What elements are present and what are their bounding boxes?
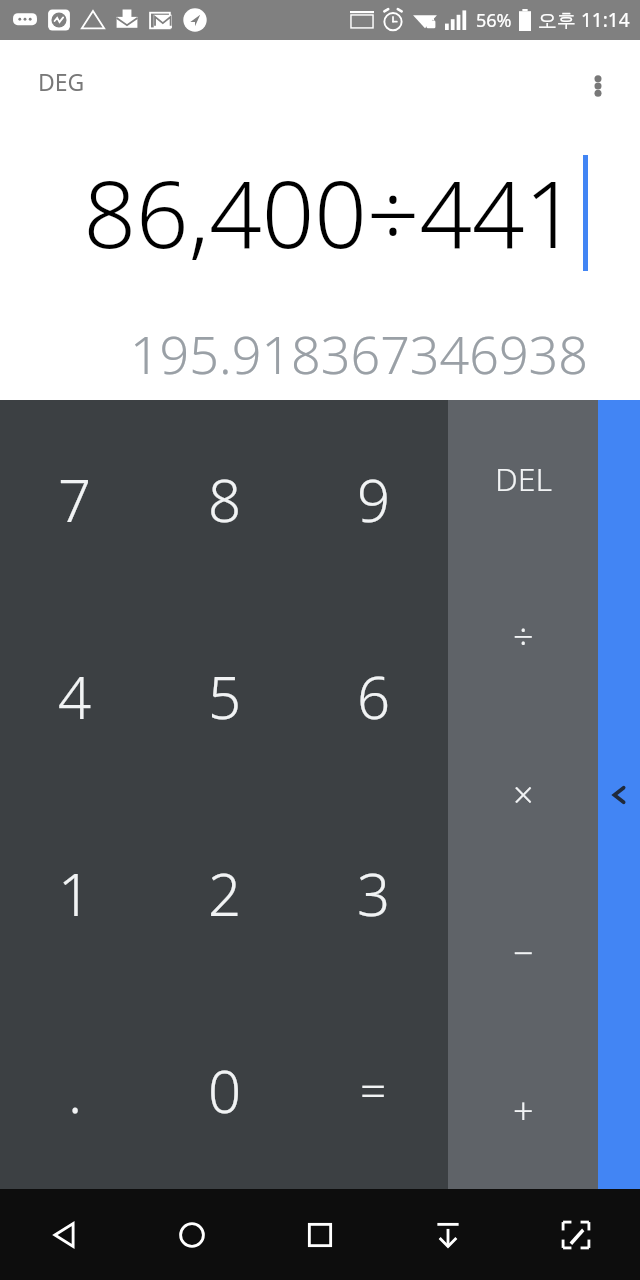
button[interactable]: 4: [0, 598, 150, 795]
staticText: 86,400÷441: [83, 150, 577, 275]
staticText: 7: [58, 460, 92, 539]
button[interactable]: 0: [150, 992, 299, 1189]
button[interactable]: Back: [0, 1189, 128, 1280]
staticText: 56%: [476, 8, 512, 33]
button[interactable]: More options: [570, 58, 626, 114]
staticText: 3: [357, 854, 391, 933]
button[interactable]: −: [448, 873, 598, 1031]
button[interactable]: 5: [150, 598, 299, 795]
staticText: 오후 11:14: [538, 7, 630, 33]
button[interactable]: Recents: [256, 1189, 384, 1280]
staticText: 6: [357, 657, 391, 736]
button[interactable]: .: [0, 992, 150, 1189]
button[interactable]: Hide keyboard: [384, 1189, 512, 1280]
staticText: 0: [208, 1051, 242, 1130]
button[interactable]: +: [448, 1031, 598, 1189]
button[interactable]: 8: [150, 400, 299, 598]
staticText: +: [513, 1086, 534, 1135]
button[interactable]: Open advanced pad: [598, 400, 640, 1189]
button[interactable]: ×: [448, 715, 598, 873]
staticText: ÷: [513, 612, 534, 661]
staticText: .: [68, 1051, 83, 1130]
staticText: 5: [208, 657, 242, 736]
staticText: =: [360, 1059, 387, 1122]
button[interactable]: =: [299, 992, 448, 1189]
staticText: 2: [208, 854, 242, 933]
staticText: 4: [58, 657, 92, 736]
staticText: DEG: [38, 66, 85, 97]
button[interactable]: DEL: [448, 400, 598, 557]
button[interactable]: DEG: [30, 62, 93, 101]
staticText: ×: [513, 770, 534, 819]
staticText: 9: [357, 460, 391, 539]
button[interactable]: 3: [299, 795, 448, 992]
staticText: 195.918367346938: [129, 318, 588, 389]
staticText: DEL: [495, 457, 552, 501]
staticText: 1: [58, 854, 92, 933]
button[interactable]: 9: [299, 400, 448, 598]
button[interactable]: 6: [299, 598, 448, 795]
button[interactable]: 7: [0, 400, 150, 598]
button[interactable]: Home: [128, 1189, 256, 1280]
button[interactable]: Screenshot: [512, 1189, 640, 1280]
staticText: 8: [208, 460, 242, 539]
button[interactable]: 1: [0, 795, 150, 992]
staticText: −: [513, 928, 534, 977]
button[interactable]: ÷: [448, 557, 598, 715]
button[interactable]: 2: [150, 795, 299, 992]
